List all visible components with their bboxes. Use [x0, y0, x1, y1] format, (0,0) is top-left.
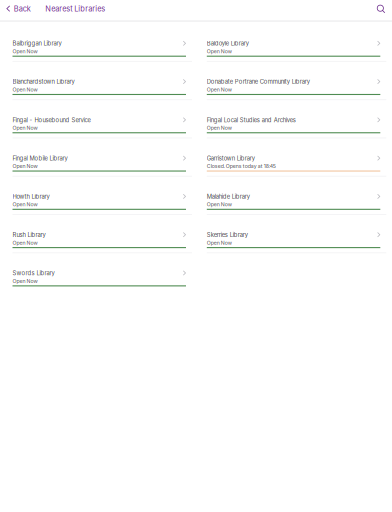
staticText: Open Now — [207, 201, 232, 208]
button[interactable]: Skerries Library — [207, 227, 386, 265]
button[interactable]: Fingal Local Studies and Archives — [207, 112, 386, 151]
button[interactable]: Malahide Library — [207, 189, 386, 227]
staticText: Balbriggan Library — [12, 40, 61, 47]
button[interactable]: Garristown Library — [207, 151, 386, 189]
staticText: Fingal Local Studies and Archives — [207, 116, 296, 124]
button[interactable]: Swords Library — [12, 265, 192, 304]
staticText: Open Now — [12, 278, 37, 284]
staticText: Closed. Opens today at 18:45 — [207, 163, 276, 169]
staticText: Donabate Portrane Community Library — [207, 78, 310, 85]
staticText: Open Now — [12, 163, 37, 169]
button[interactable]: Howth Library — [12, 189, 192, 227]
button[interactable]: Donabate Portrane Community Library — [207, 74, 386, 112]
staticText: Open Now — [12, 86, 37, 93]
staticText: Open Now — [207, 86, 232, 93]
staticText: Open Now — [207, 240, 232, 246]
staticText: Skerries Library — [207, 231, 248, 238]
staticText: Malahide Library — [207, 193, 250, 200]
staticText: Open Now — [207, 48, 232, 54]
button[interactable]: Search — [377, 0, 392, 21]
button[interactable]: Back — [0, 0, 34, 21]
staticText: Back — [14, 4, 31, 13]
staticText: Howth Library — [12, 193, 49, 200]
staticText: Swords Library — [12, 270, 54, 277]
staticText: Open Now — [12, 201, 37, 208]
staticText: Open Now — [12, 125, 37, 131]
staticText: Open Now — [207, 125, 232, 131]
staticText: Garristown Library — [207, 155, 255, 162]
staticText: Nearest Libraries — [45, 4, 105, 13]
button[interactable]: Blanchardstown Library — [12, 74, 192, 112]
button[interactable]: Rush Library — [12, 227, 192, 265]
staticText: Baldoyle Library — [207, 40, 249, 47]
button[interactable]: Balbriggan Library — [12, 36, 192, 74]
staticText: Open Now — [12, 48, 37, 54]
button[interactable]: Baldoyle Library — [207, 36, 386, 74]
staticText: Fingal Mobile Library — [12, 155, 67, 162]
staticText: Rush Library — [12, 231, 45, 238]
staticText: Blanchardstown Library — [12, 78, 74, 85]
button[interactable]: Fingal - Housebound Service — [12, 112, 192, 151]
staticText: Open Now — [12, 240, 37, 246]
staticText: Fingal - Housebound Service — [12, 116, 90, 124]
button[interactable]: Fingal Mobile Library — [12, 151, 192, 189]
